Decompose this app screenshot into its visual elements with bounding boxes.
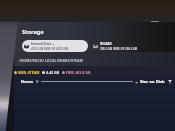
staticText: /HOME/DECK/.LOCAL/SHARE/STEAM [19,58,83,63]
staticText: 236.3 GB FREE OF 236.3 GB [100,47,138,51]
staticText: Items [21,79,34,85]
button[interactable]: Size on Disk [135,79,165,85]
button[interactable]: SDCARD [93,40,140,52]
staticText: 4.43 GB [46,70,60,74]
staticText: FREE 465.8 GB [66,70,91,74]
staticText: SDCARD [100,42,112,46]
button[interactable]: Internal Drive [22,40,88,52]
staticText: Storage [22,28,44,36]
staticText: 472.3 GB FREE OF 473.5 GB [31,47,69,51]
button[interactable]: Filter [168,80,172,84]
staticText: Internal Drive [31,42,52,46]
staticText: 0 [36,79,39,85]
staticText: NON-STEAM [18,70,40,74]
staticText: Size on Disk [140,79,165,85]
